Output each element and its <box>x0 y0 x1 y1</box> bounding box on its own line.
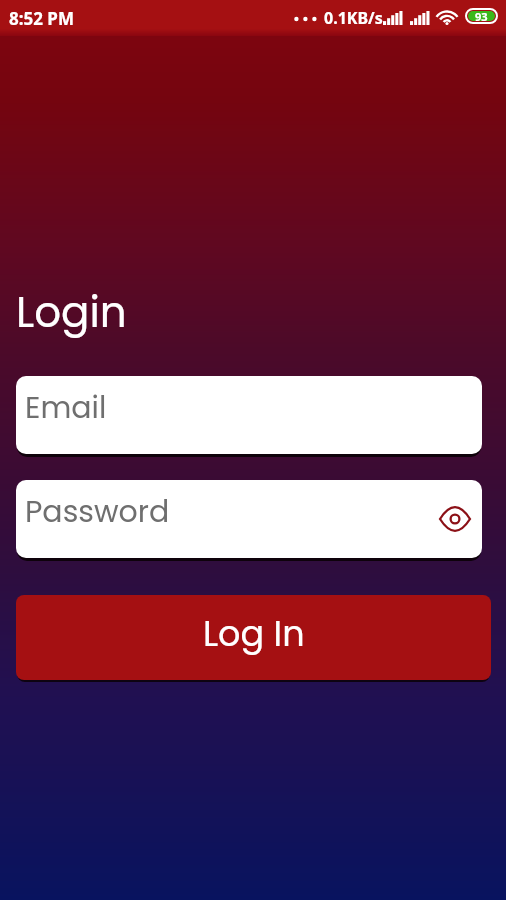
staticText: Log In <box>203 609 305 658</box>
staticText: Login <box>16 283 127 342</box>
staticText: 0.1KB/s <box>324 7 383 29</box>
staticText: 8:52 PM <box>9 7 74 30</box>
button[interactable]: Password <box>16 480 482 558</box>
button[interactable]: Email <box>16 376 482 454</box>
staticText: Email <box>25 387 107 429</box>
staticText: 93 <box>475 9 488 24</box>
button[interactable]: Log In <box>16 595 491 680</box>
button[interactable]: Show password <box>433 497 477 541</box>
staticText: Password <box>25 491 170 533</box>
